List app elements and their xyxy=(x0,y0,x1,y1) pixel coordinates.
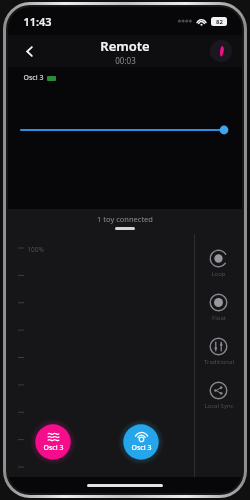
staticText: 82 xyxy=(216,18,223,26)
button[interactable]: Traditional xyxy=(195,336,242,367)
button[interactable]: Float xyxy=(195,292,242,323)
button[interactable]: Osci 3 vibration xyxy=(30,419,76,465)
staticText: Float xyxy=(212,314,226,322)
staticText: Remote xyxy=(100,37,150,55)
staticText: Local Sync xyxy=(204,402,234,410)
staticText: Traditional xyxy=(204,358,234,366)
staticText: 11:43 xyxy=(23,14,52,29)
button[interactable]: Intensity slider xyxy=(21,123,229,137)
staticText: Osci 3 xyxy=(131,443,152,453)
button[interactable]: Osci 3 signal xyxy=(118,419,164,465)
staticText: 100% xyxy=(27,245,44,254)
staticText: Osci 3 xyxy=(43,443,64,453)
button[interactable]: Back xyxy=(16,38,42,64)
button[interactable]: Connected toy xyxy=(210,40,232,62)
button[interactable]: Loop xyxy=(195,248,242,279)
staticText: Osci 3 xyxy=(23,73,44,83)
staticText: Loop xyxy=(211,270,226,278)
button[interactable]: Local Sync xyxy=(195,380,242,411)
staticText: 00:03 xyxy=(115,55,136,66)
staticText: 1 toy connected xyxy=(97,214,153,224)
